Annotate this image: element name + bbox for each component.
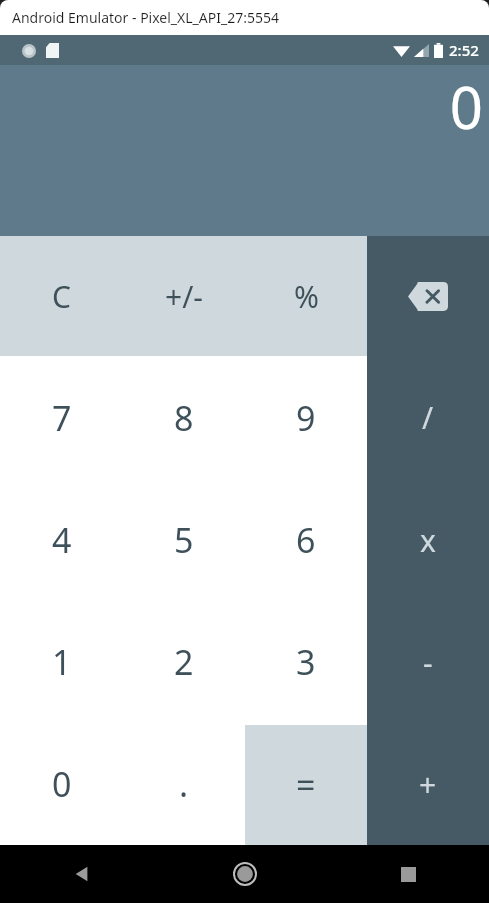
button[interactable]: 8 [123, 356, 245, 479]
staticText: x [420, 520, 436, 561]
button[interactable]: 6 [245, 479, 367, 601]
staticText: / [422, 397, 434, 438]
button[interactable]: 9 [245, 356, 367, 479]
staticText: 2:52 [449, 40, 479, 60]
staticText: 6 [296, 517, 316, 563]
button[interactable]: 1 [0, 601, 123, 723]
button[interactable]: x [367, 479, 489, 601]
staticText: 0 [449, 67, 483, 146]
button[interactable]: 7 [0, 356, 123, 479]
button[interactable]: 2 [123, 601, 245, 723]
button[interactable]: - [367, 601, 489, 723]
button[interactable]: Back [54, 846, 110, 902]
staticText: = [296, 762, 316, 808]
staticText: 0 [52, 761, 72, 807]
button[interactable]: / [367, 356, 489, 479]
staticText: 4 [52, 517, 72, 563]
staticText: . [179, 761, 189, 807]
button[interactable]: 3 [245, 601, 367, 723]
staticText: 1 [52, 639, 72, 685]
button[interactable]: = [245, 725, 367, 845]
staticText: 3 [296, 639, 316, 685]
button[interactable]: 4 [0, 479, 123, 601]
button[interactable]: Home [217, 846, 273, 902]
button[interactable]: 0 [0, 723, 123, 845]
staticText: 8 [174, 395, 194, 441]
button[interactable]: + [367, 723, 489, 845]
button[interactable]: % [245, 236, 367, 356]
button[interactable]: Backspace [367, 236, 489, 356]
button[interactable]: . [123, 723, 245, 845]
staticText: 5 [174, 517, 194, 563]
staticText: - [423, 642, 433, 683]
staticText: C [52, 276, 71, 317]
staticText: Android Emulator - Pixel_XL_API_27:5554 [12, 8, 279, 27]
button[interactable]: C [0, 236, 123, 356]
staticText: 9 [296, 395, 316, 441]
staticText: +/- [165, 276, 203, 317]
staticText: 2 [174, 639, 194, 685]
staticText: % [294, 276, 319, 317]
staticText: 7 [52, 395, 72, 441]
staticText: + [419, 764, 437, 805]
button[interactable]: Recent apps [380, 846, 436, 902]
button[interactable]: +/- [123, 236, 245, 356]
button[interactable]: 5 [123, 479, 245, 601]
